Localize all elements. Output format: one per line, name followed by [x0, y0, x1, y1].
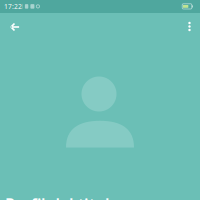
staticText: Perfil del titular	[5, 193, 126, 200]
button[interactable]: More options	[178, 13, 200, 39]
staticText: 17:22	[4, 2, 22, 11]
button[interactable]: Back	[1, 14, 27, 40]
